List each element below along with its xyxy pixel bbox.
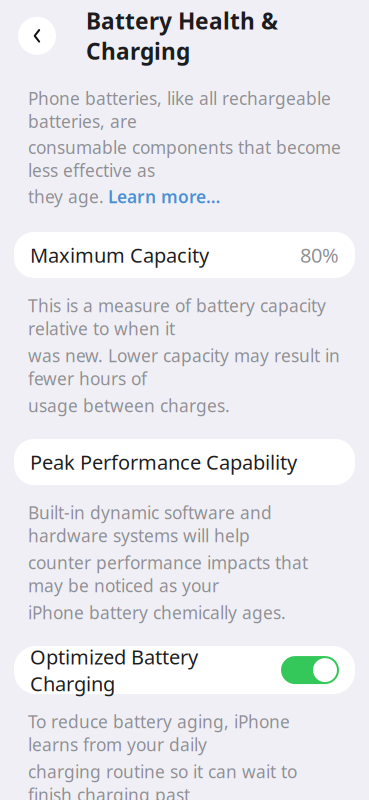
staticText: was new. Lower capacity may result in fe… xyxy=(28,344,340,390)
button[interactable]: Optimized Battery Charging xyxy=(14,646,355,694)
staticText: Learn more… xyxy=(108,185,220,208)
staticText: This is a measure of battery capacity re… xyxy=(28,294,326,340)
staticText: iPhone battery chemically ages. xyxy=(28,601,286,624)
staticText: Peak Performance Capability xyxy=(30,449,297,475)
staticText: Phone batteries, like all rechargeable b… xyxy=(28,87,331,133)
button[interactable]: Back xyxy=(18,17,56,55)
staticText: counter performance impacts that may be … xyxy=(28,551,308,597)
staticText: consumable components that become less e… xyxy=(28,136,341,182)
staticText: Optimized Battery Charging xyxy=(30,643,198,697)
button[interactable]: Learn more… xyxy=(108,185,220,208)
staticText: Battery Health & Charging xyxy=(86,6,278,66)
staticText: usage between charges. xyxy=(28,394,230,417)
staticText: charging routine so it can wait to finis… xyxy=(28,760,297,800)
staticText: 80% xyxy=(300,242,339,268)
staticText: they age. xyxy=(28,185,104,208)
button[interactable]: Maximum Capacity xyxy=(14,232,355,278)
staticText: Maximum Capacity xyxy=(30,242,209,268)
staticText: To reduce battery aging, iPhone learns f… xyxy=(28,710,290,756)
button[interactable]: Peak Performance Capability xyxy=(14,439,355,485)
staticText: Built-in dynamic software and hardware s… xyxy=(28,501,272,547)
